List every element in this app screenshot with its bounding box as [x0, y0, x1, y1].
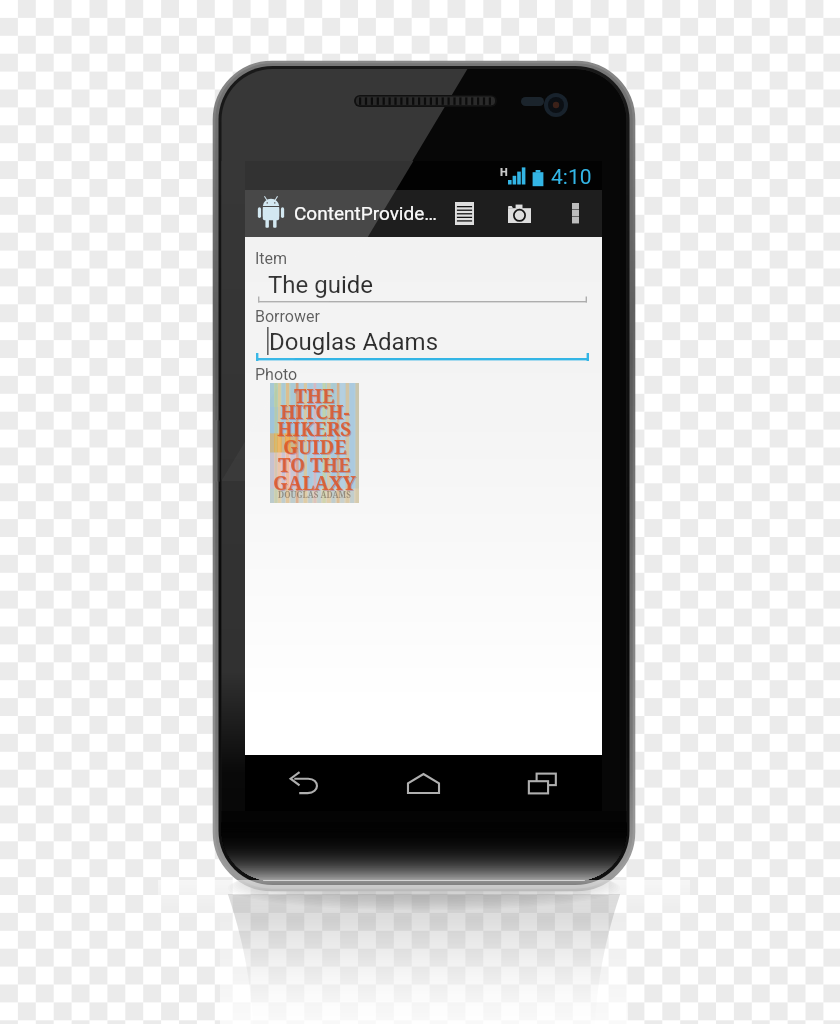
staticText: Douglas Adams	[269, 328, 439, 356]
staticText: HITCH-	[281, 400, 351, 426]
staticText: Item	[255, 249, 288, 268]
button[interactable]: Home	[364, 755, 483, 811]
staticText: TO THE	[278, 452, 351, 478]
button[interactable]: More options	[556, 190, 594, 237]
staticText: HITCH-	[280, 399, 350, 425]
button[interactable]: Camera	[494, 190, 544, 237]
staticText: HIKERS	[277, 416, 352, 442]
staticText: THE	[295, 384, 336, 410]
staticText: GALAXY	[274, 471, 357, 497]
staticText: GUIDE	[284, 435, 348, 461]
button[interactable]: List	[441, 190, 487, 237]
button[interactable]: Back	[245, 755, 364, 811]
staticText: GALAXY	[273, 470, 356, 496]
staticText: DOUGLAS ADAMS	[278, 489, 351, 500]
staticText: Photo	[255, 365, 298, 384]
staticText: Borrower	[255, 307, 320, 326]
staticText: GUIDE	[283, 434, 347, 460]
staticText: 4:10	[551, 165, 592, 190]
staticText: HIKERS	[278, 417, 353, 443]
staticText: THE	[294, 383, 335, 409]
staticText: ContentProvide…	[294, 202, 437, 224]
staticText: H	[500, 166, 508, 179]
staticText: The guide	[268, 271, 374, 299]
button[interactable]: Recent apps	[483, 755, 602, 811]
staticText: TO THE	[279, 453, 352, 479]
